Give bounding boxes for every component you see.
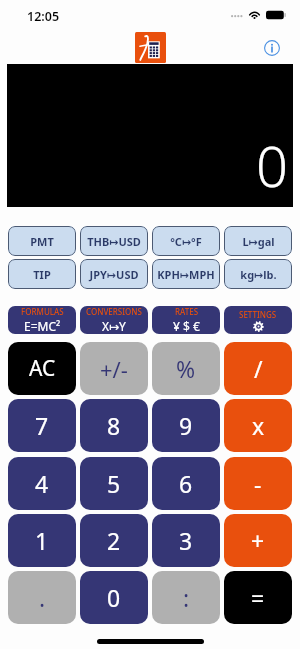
staticText: 6	[179, 468, 193, 499]
button[interactable]: °C↦°F	[152, 226, 220, 256]
staticText: -	[254, 468, 262, 499]
staticText: x	[252, 410, 265, 441]
button[interactable]: 4	[8, 457, 76, 510]
button[interactable]: JPY↦USD	[80, 259, 148, 289]
staticText: 0	[256, 127, 288, 203]
staticText: 0	[107, 582, 121, 613]
staticText: FORMULAS	[21, 306, 64, 317]
staticText: L↦gal	[242, 234, 275, 249]
staticText: 4	[35, 468, 49, 499]
button[interactable]: SETTINGS	[224, 306, 292, 334]
staticText: 2	[107, 525, 121, 556]
staticText: :	[183, 582, 190, 613]
button[interactable]: AC	[8, 342, 76, 395]
button[interactable]: x	[224, 399, 292, 452]
button[interactable]: 1	[8, 514, 76, 567]
button[interactable]: +/-	[80, 342, 148, 395]
button[interactable]: =	[224, 571, 292, 624]
staticText: 5	[107, 468, 121, 499]
staticText: PMT	[30, 234, 54, 249]
button[interactable]: 8	[80, 399, 148, 452]
button[interactable]: RATES	[152, 306, 220, 334]
button[interactable]: -	[224, 457, 292, 510]
staticText: /	[254, 353, 263, 384]
button[interactable]: +	[224, 514, 292, 567]
staticText: %	[176, 353, 196, 384]
button[interactable]: 6	[152, 457, 220, 510]
button[interactable]: App icon	[135, 32, 166, 63]
button[interactable]: CONVERSIONS	[80, 306, 148, 334]
staticText: AC	[29, 354, 56, 383]
button[interactable]: 0	[80, 571, 148, 624]
button[interactable]: 5	[80, 457, 148, 510]
button[interactable]: 7	[8, 399, 76, 452]
button[interactable]: THB↦USD	[80, 226, 148, 256]
button[interactable]: 2	[80, 514, 148, 567]
button[interactable]: kg↦lb.	[224, 259, 292, 289]
staticText: RATES	[175, 306, 199, 317]
staticText: +/-	[100, 354, 128, 384]
button[interactable]: FORMULAS	[8, 306, 76, 334]
button[interactable]: .	[8, 571, 76, 624]
staticText: E=MC²	[24, 318, 61, 334]
staticText: .	[39, 582, 46, 613]
staticText: JPY↦USD	[89, 267, 139, 282]
button[interactable]: 3	[152, 514, 220, 567]
staticText: +	[251, 525, 265, 556]
button[interactable]: :	[152, 571, 220, 624]
staticText: 9	[179, 410, 193, 441]
staticText: SETTINGS	[239, 309, 277, 320]
staticText: X↦Y	[102, 318, 126, 334]
button[interactable]: %	[152, 342, 220, 395]
staticText: 3	[179, 525, 193, 556]
button[interactable]: 9	[152, 399, 220, 452]
staticText: CONVERSIONS	[86, 306, 142, 317]
button[interactable]: L↦gal	[224, 226, 292, 256]
button[interactable]: Info	[264, 40, 280, 56]
staticText: °C↦°F	[170, 234, 202, 249]
staticText: 12:05	[27, 8, 60, 25]
staticText: 1	[35, 525, 49, 556]
button[interactable]: TIP	[8, 259, 76, 289]
button[interactable]: /	[224, 342, 292, 395]
staticText: THB↦USD	[87, 234, 141, 249]
staticText: 7	[35, 410, 49, 441]
button[interactable]: KPH↦MPH	[152, 259, 220, 289]
staticText: =	[251, 582, 265, 613]
staticText: kg↦lb.	[240, 267, 277, 282]
button[interactable]: PMT	[8, 226, 76, 256]
staticText: KPH↦MPH	[157, 267, 215, 282]
staticText: ¥ $ €	[173, 318, 200, 334]
staticText: 8	[107, 410, 121, 441]
staticText: TIP	[33, 267, 51, 282]
